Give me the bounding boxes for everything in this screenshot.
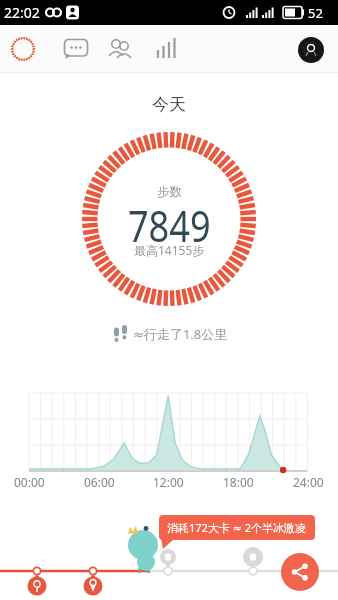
staticText: 消耗172大卡 ≈ 2个半冰激凌 <box>167 520 307 535</box>
staticText: 52 <box>308 4 323 22</box>
staticText: 今天 <box>152 94 186 115</box>
staticText: 最高14155步 <box>134 242 205 258</box>
staticText: 24:00 <box>293 474 324 490</box>
staticText: 00:00 <box>14 474 45 490</box>
button[interactable] <box>154 36 180 62</box>
button[interactable] <box>62 36 90 64</box>
button[interactable] <box>281 553 319 591</box>
button[interactable] <box>106 36 134 64</box>
button[interactable] <box>8 34 38 64</box>
button[interactable] <box>298 37 324 63</box>
staticText: 12:00 <box>153 474 184 490</box>
staticText: 7849 <box>128 196 211 248</box>
staticText: 18:00 <box>223 474 254 490</box>
staticText: 步数 <box>157 184 182 200</box>
staticText: 06:00 <box>84 474 115 490</box>
staticText: 22:02 <box>4 3 40 22</box>
staticText: ≈行走了1.8公里 <box>133 325 228 343</box>
button[interactable]: 消耗172大卡 ≈ 2个半冰激凌 <box>159 515 315 540</box>
